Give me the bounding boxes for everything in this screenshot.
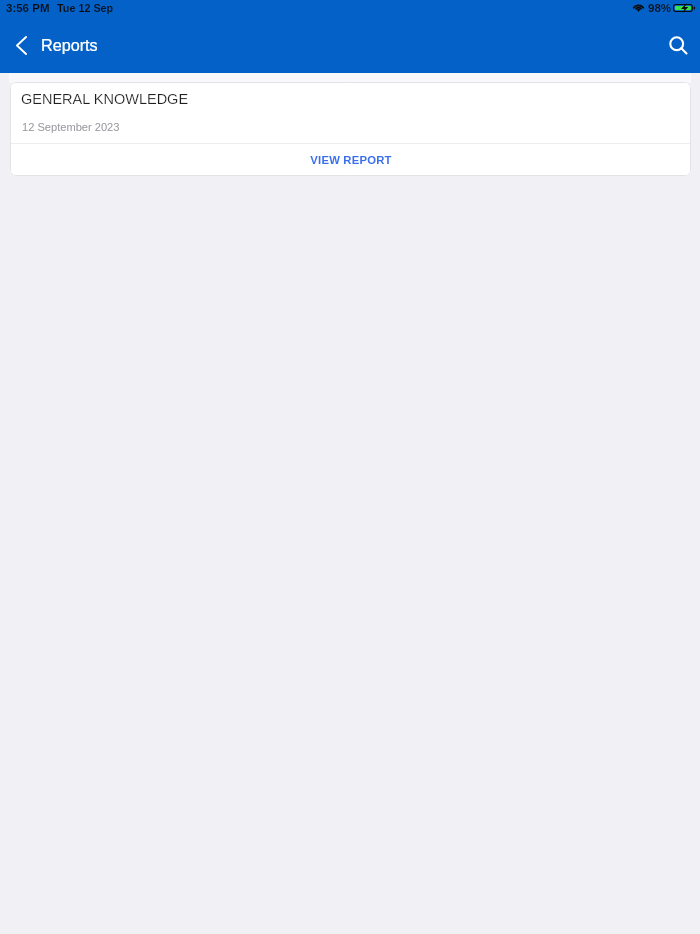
staticText: Tue 12 Sep [57, 2, 114, 14]
staticText: GENERAL KNOWLEDGE [21, 91, 189, 107]
button[interactable]: Search [657, 26, 697, 66]
staticText: Reports [41, 36, 98, 54]
button[interactable]: VIEW REPORT [10, 144, 691, 176]
button[interactable]: Back [4, 29, 38, 63]
staticText: 98% [648, 2, 672, 15]
other: Wi-Fi [632, 4, 645, 12]
button[interactable]: GENERAL KNOWLEDGE [10, 82, 691, 143]
staticText: 12 September 2023 [22, 121, 120, 133]
other: Battery 98 percent, charging [673, 4, 695, 12]
staticText: 3:56 PM [6, 2, 50, 15]
staticText: VIEW REPORT [310, 154, 392, 167]
